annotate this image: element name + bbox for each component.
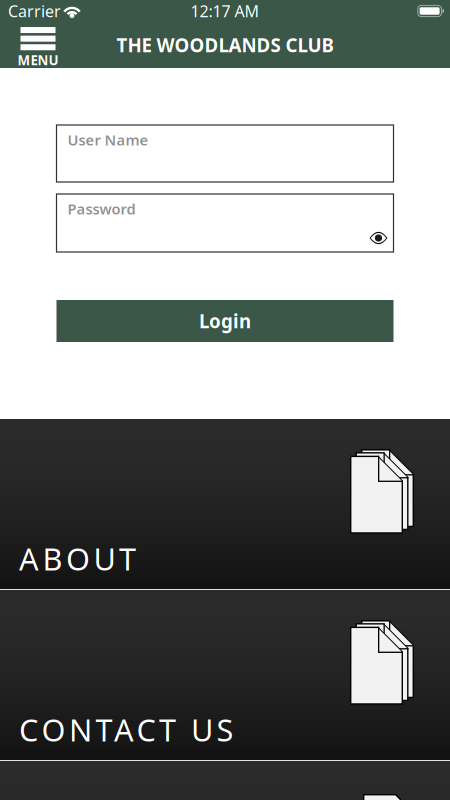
staticText: MENU xyxy=(17,51,58,69)
button[interactable]: User Name xyxy=(56,125,393,182)
button[interactable]: Events xyxy=(0,761,450,800)
staticText: User Name xyxy=(67,130,148,149)
button[interactable]: Menu xyxy=(16,22,60,68)
staticText: Carrier xyxy=(8,0,61,22)
button[interactable]: Login xyxy=(56,300,393,342)
staticText: ABOUT xyxy=(19,538,136,579)
staticText: Password xyxy=(67,199,135,218)
staticText: CONTACT US xyxy=(19,709,233,750)
button[interactable]: ABOUT xyxy=(0,419,450,589)
staticText: 12:17 AM xyxy=(190,0,259,22)
button[interactable]: CONTACT US xyxy=(0,590,450,760)
staticText: Login xyxy=(199,309,251,333)
staticText: THE WOODLANDS CLUB xyxy=(116,33,333,57)
button[interactable]: Password xyxy=(56,194,393,252)
